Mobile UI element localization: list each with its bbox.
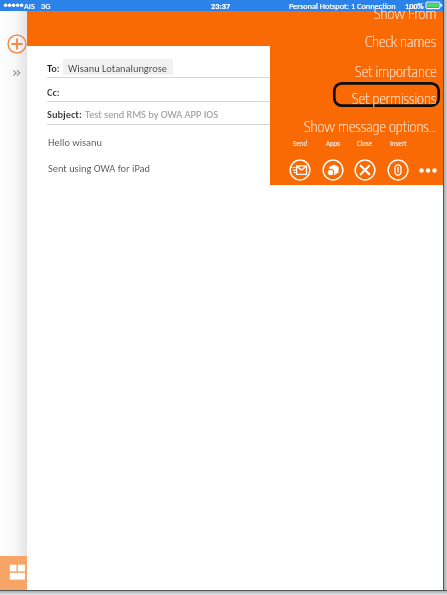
button[interactable]: To: (47, 60, 167, 76)
staticText: Show From (374, 4, 437, 23)
button[interactable]: Apps (0, 556, 27, 590)
staticText: 100% (405, 1, 424, 11)
button[interactable]: Show From (270, 0, 443, 27)
button[interactable]: Send (289, 159, 311, 181)
staticText: AIS (24, 1, 35, 11)
button[interactable]: Subject: (47, 106, 218, 122)
staticText: Set permissions (352, 89, 437, 108)
staticText: Test send RMS by OWA APP IOS (85, 108, 218, 121)
staticText: Set importance (355, 62, 437, 81)
button[interactable]: Set permissions (270, 84, 443, 112)
button[interactable]: More options (419, 162, 441, 179)
staticText: Apps (326, 139, 341, 148)
button[interactable]: Expand navigation (9, 65, 25, 81)
staticText: Sent using OWA for iPad (48, 162, 151, 175)
staticText: Close (357, 139, 373, 148)
staticText: Personal Hotspot: 1 Connection (289, 1, 396, 11)
staticText: Subject: (47, 108, 82, 121)
button[interactable]: Apps (322, 159, 344, 181)
button[interactable]: Show message options... (270, 112, 443, 140)
button[interactable]: Check names (270, 27, 443, 55)
staticText: 23:37 (211, 1, 231, 11)
staticText: Cc: (47, 86, 60, 99)
button[interactable]: New message (7, 34, 27, 54)
staticText: Check names (365, 32, 437, 51)
button[interactable]: Close (354, 159, 376, 181)
button[interactable]: Insert (387, 159, 409, 181)
staticText: Insert (390, 139, 407, 148)
staticText: Hello wisanu (48, 136, 103, 149)
staticText: 3G (41, 1, 51, 11)
button[interactable]: Cc: (47, 85, 60, 100)
staticText: Wisanu Lotanalungrose (68, 62, 167, 75)
button[interactable]: Set importance (270, 57, 443, 85)
staticText: Send (293, 139, 308, 148)
staticText: Show message options... (304, 117, 437, 136)
staticText: To: (47, 62, 60, 75)
